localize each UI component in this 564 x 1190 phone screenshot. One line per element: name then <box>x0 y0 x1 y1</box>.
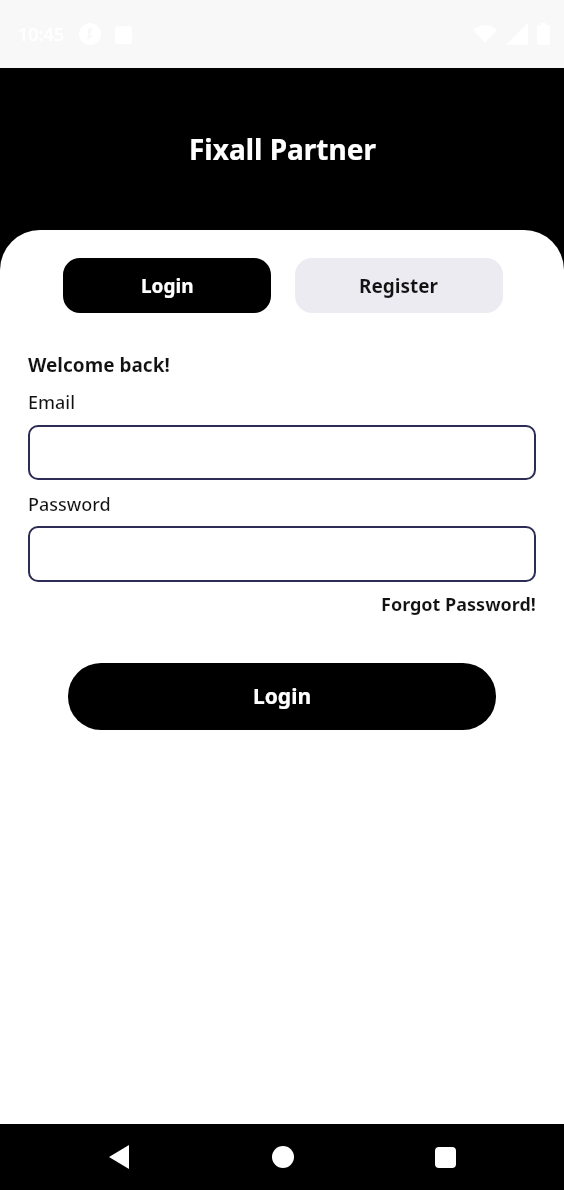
button[interactable]: Forgot Password! <box>381 592 536 617</box>
button[interactable]: Register <box>295 258 503 313</box>
staticText: Fixall Partner <box>189 130 376 168</box>
button[interactable] <box>421 1133 469 1181</box>
staticText: Login <box>141 273 194 299</box>
button[interactable]: Login <box>63 258 271 313</box>
button[interactable] <box>28 526 536 582</box>
staticText: Welcome back! <box>28 352 170 378</box>
staticText: Password <box>28 492 111 517</box>
staticText: Register <box>359 273 439 299</box>
staticText: Login <box>253 682 312 711</box>
button[interactable] <box>28 425 536 480</box>
button[interactable]: Login <box>68 663 496 730</box>
button[interactable] <box>259 1133 307 1181</box>
staticText: Email <box>28 390 76 415</box>
button[interactable] <box>95 1133 143 1181</box>
